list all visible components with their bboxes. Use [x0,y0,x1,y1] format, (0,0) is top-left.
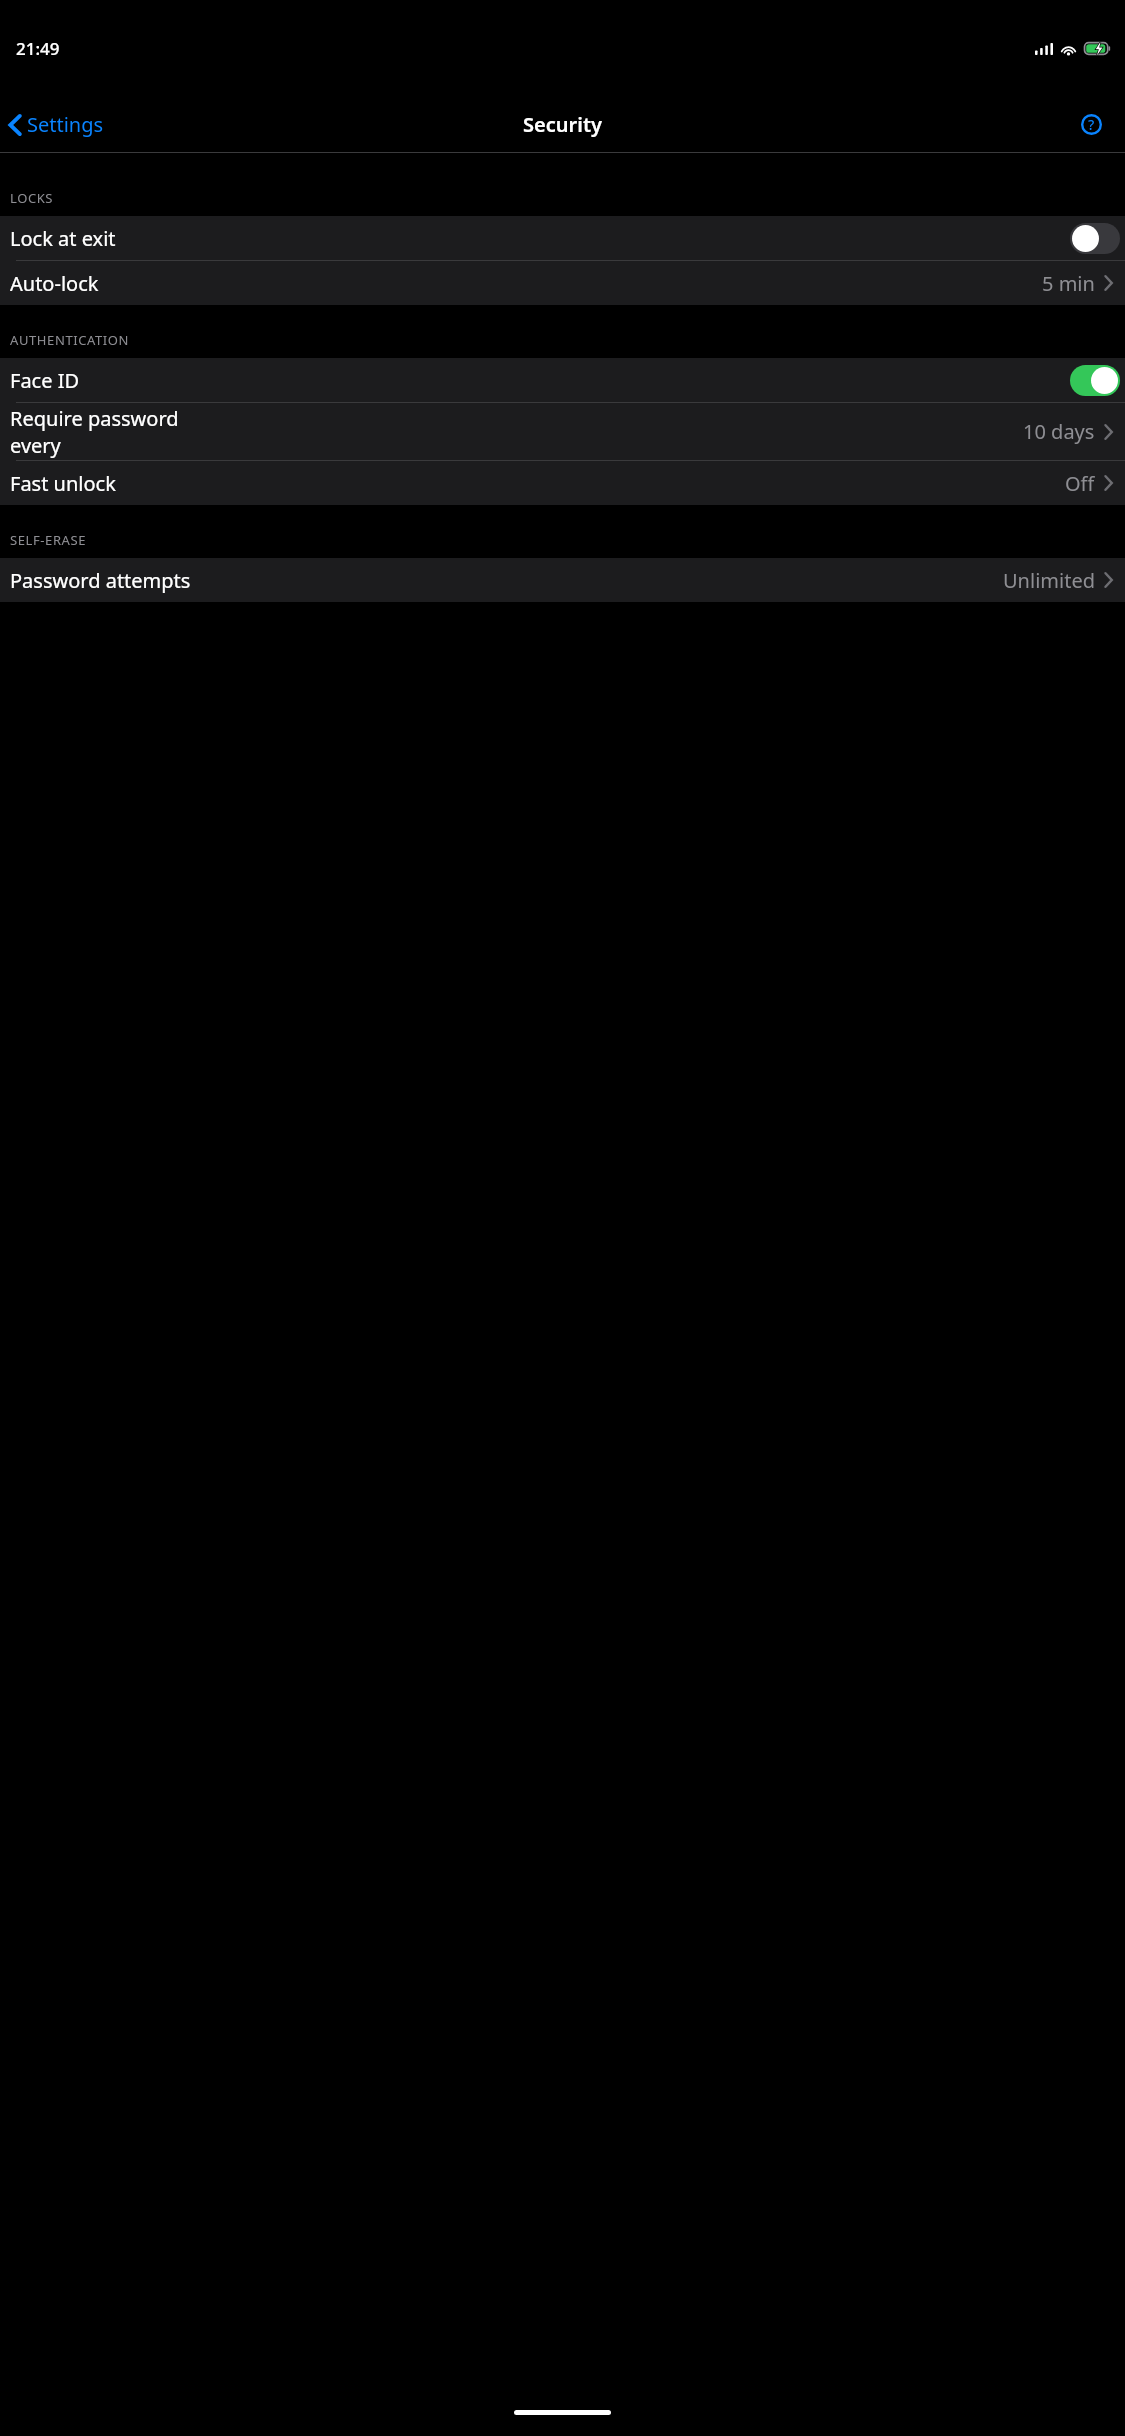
staticText: SELF-ERASE [10,531,87,549]
staticText: ? [1088,115,1095,134]
button[interactable]: Off [1070,223,1120,254]
staticText: Settings [27,111,104,138]
button[interactable]: Require password every [0,403,1125,460]
staticText: 10 days [1023,418,1095,445]
button[interactable]: Fast unlock [0,461,1125,505]
staticText: Auto-lock [10,270,1042,297]
button[interactable]: Settings [0,105,114,144]
staticText: Fast unlock [10,470,1065,497]
button[interactable]: Auto-lock [0,261,1125,305]
staticText: Off [1065,470,1095,497]
button[interactable]: On [1070,365,1120,396]
staticText: Face ID [10,367,1070,394]
button[interactable]: Password attempts [0,558,1125,602]
staticText: 5 min [1042,270,1095,297]
button[interactable]: Face ID [0,358,1125,402]
button[interactable]: Lock at exit [0,216,1125,260]
staticText: LOCKS [10,189,54,207]
button[interactable]: Help [1069,102,1113,146]
staticText: Lock at exit [10,225,1070,252]
staticText: Unlimited [1003,567,1095,594]
staticText: 21:49 [16,37,60,60]
staticText: Require password every [10,405,1023,459]
staticText: Security [523,111,602,138]
staticText: Password attempts [10,567,1003,594]
staticText: AUTHENTICATION [10,331,130,349]
